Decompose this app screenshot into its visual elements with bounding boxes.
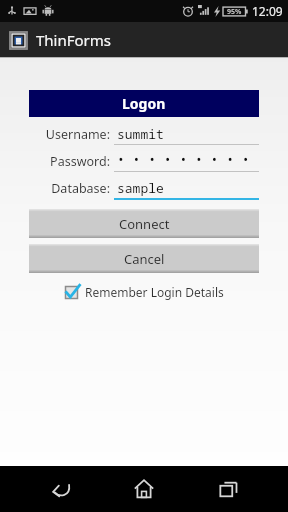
button[interactable]: Connect [29,209,259,238]
staticText: Logon [122,94,166,113]
staticText: 12:09 [252,3,283,19]
staticText: Database: [29,180,110,197]
staticText: Remember Login Details [85,284,224,300]
staticText: 95% [227,7,242,17]
staticText: ThinForms [36,30,112,50]
staticText: Password: [29,153,110,170]
button[interactable]: Back [38,466,84,512]
button[interactable]: Recent apps [205,466,251,512]
button[interactable]: Database: [29,177,259,200]
button[interactable]: Password: [29,150,259,172]
staticText: • • • • • • • • • • [117,150,259,171]
button[interactable]: Username: [29,123,259,145]
staticText: Username: [29,126,110,143]
staticText: sample [117,179,164,197]
staticText: Connect [119,215,170,233]
staticText: Cancel [124,250,165,268]
button[interactable]: Cancel [29,244,259,273]
button[interactable]: Remember Login Details [0,282,288,302]
button[interactable]: Home [121,466,167,512]
staticText: summit [117,125,164,143]
